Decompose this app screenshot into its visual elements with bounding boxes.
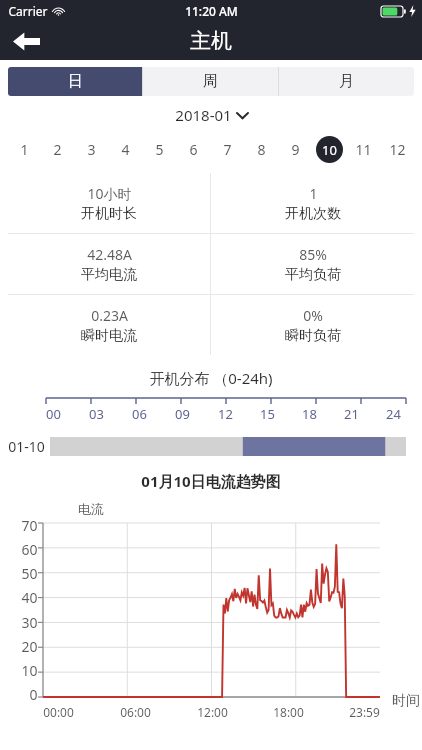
button[interactable]: 2: [41, 132, 74, 166]
button[interactable]: 3: [74, 132, 108, 166]
staticText: 日: [68, 72, 83, 91]
staticText: 3: [87, 140, 96, 159]
staticText: 平均负荷: [285, 266, 341, 284]
button[interactable]: 月: [279, 67, 414, 96]
staticText: 20: [21, 637, 38, 656]
staticText: 1: [309, 184, 318, 203]
staticText: 11: [355, 140, 372, 159]
staticText: 9: [291, 140, 300, 159]
button[interactable]: Back: [6, 22, 46, 60]
staticText: 0: [29, 685, 38, 704]
staticText: 06: [132, 405, 147, 423]
staticText: 09: [175, 405, 190, 423]
staticText: 开机时长: [81, 205, 137, 223]
button[interactable]: 85%: [211, 234, 414, 294]
button[interactable]: 0%: [211, 295, 414, 355]
button[interactable]: 10小时: [8, 173, 210, 233]
button[interactable]: 0.23A: [8, 295, 210, 355]
button[interactable]: 1: [211, 173, 414, 233]
staticText: 42.48A: [87, 245, 132, 264]
staticText: 00:00: [43, 704, 74, 720]
button[interactable]: 42.48A: [8, 234, 210, 294]
staticText: 50: [21, 564, 38, 583]
button[interactable]: 周: [143, 67, 278, 96]
staticText: 6: [189, 140, 198, 159]
staticText: 12:00: [197, 704, 228, 720]
staticText: 周: [203, 72, 218, 91]
button[interactable]: 2018-01: [175, 105, 248, 125]
staticText: 瞬时电流: [81, 327, 137, 345]
staticText: 电流: [78, 501, 104, 517]
staticText: 23:59: [349, 704, 380, 720]
staticText: 10: [322, 141, 337, 159]
staticText: 06:00: [120, 704, 151, 720]
staticText: 21: [344, 405, 359, 423]
staticText: 0.23A: [91, 306, 128, 325]
button[interactable]: 10: [312, 132, 346, 166]
staticText: 00: [46, 405, 61, 423]
staticText: 2018-01: [175, 105, 232, 125]
staticText: 03: [89, 405, 104, 423]
staticText: 开机分布 （0-24h): [149, 368, 273, 388]
staticText: 12: [218, 405, 233, 423]
staticText: 10: [21, 661, 38, 680]
staticText: 18:00: [273, 704, 304, 720]
button[interactable]: 6: [176, 132, 210, 166]
staticText: 4: [121, 140, 130, 159]
staticText: 11:20 AM: [185, 3, 238, 19]
staticText: 70: [21, 516, 38, 535]
button[interactable]: 11: [346, 132, 380, 166]
staticText: 01月10日电流趋势图: [141, 471, 281, 491]
staticText: 12: [389, 140, 406, 159]
staticText: 15: [260, 405, 275, 423]
staticText: 30: [21, 613, 38, 632]
staticText: 主机: [190, 28, 232, 54]
staticText: 18: [302, 405, 317, 423]
staticText: 24: [386, 405, 401, 423]
staticText: 85%: [299, 245, 327, 264]
button[interactable]: 7: [210, 132, 244, 166]
staticText: 8: [257, 140, 266, 159]
button[interactable]: 8: [244, 132, 278, 166]
button[interactable]: 日: [8, 67, 142, 96]
staticText: 1: [20, 140, 29, 159]
staticText: 0%: [303, 306, 323, 325]
button[interactable]: 1: [8, 132, 41, 166]
staticText: 开机次数: [285, 205, 341, 223]
staticText: 时间: [392, 692, 420, 710]
staticText: 40: [21, 588, 38, 607]
staticText: 平均电流: [81, 266, 137, 284]
staticText: 2: [53, 140, 62, 159]
button[interactable]: 9: [278, 132, 312, 166]
button[interactable]: 12: [380, 132, 414, 166]
button[interactable]: 5: [142, 132, 176, 166]
staticText: 月: [339, 72, 354, 91]
staticText: 10小时: [87, 184, 132, 203]
staticText: 01-10: [8, 437, 45, 456]
button[interactable]: 4: [108, 132, 142, 166]
staticText: 7: [223, 140, 232, 159]
staticText: 60: [21, 540, 38, 559]
staticText: Carrier: [8, 3, 48, 19]
staticText: 瞬时负荷: [285, 327, 341, 345]
staticText: 5: [155, 140, 164, 159]
